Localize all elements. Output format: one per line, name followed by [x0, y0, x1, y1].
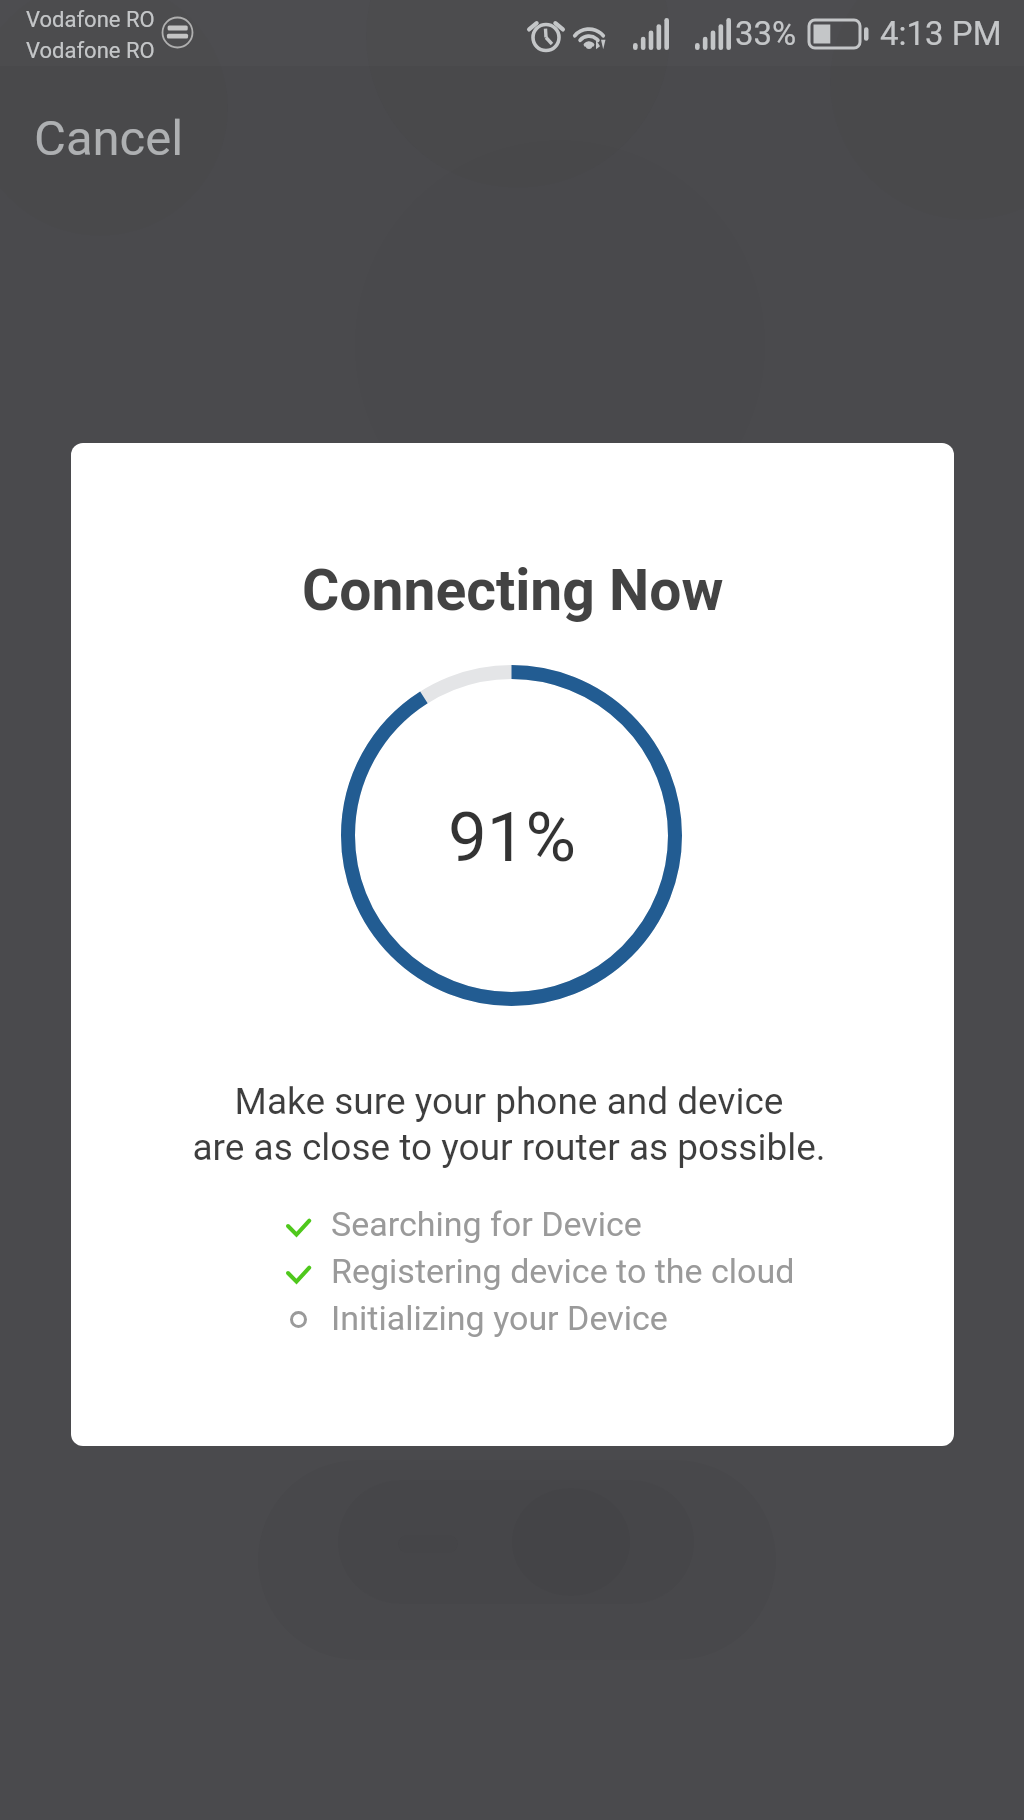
button[interactable]: Cancel: [0, 68, 250, 208]
staticText: Cancel: [34, 110, 184, 167]
staticText: Connecting Now: [302, 557, 724, 624]
other: Alarm set: [527, 15, 565, 53]
staticText: Vodafone RO: [26, 38, 155, 64]
staticText: Registering device to the cloud: [331, 1251, 795, 1291]
staticText: Vodafone RO: [26, 7, 155, 33]
other: App notification: [161, 16, 194, 49]
staticText: 91%: [448, 797, 577, 878]
staticText: 33%: [735, 14, 797, 53]
other: Wi-Fi connected: [573, 15, 613, 53]
staticText: Searching for Device: [331, 1204, 642, 1244]
other: Connection progress 91 percent: [341, 665, 682, 1006]
staticText: 4:13 PM: [880, 14, 1002, 53]
other: Mobile signal strength: [633, 18, 669, 50]
staticText: Initializing your Device: [331, 1298, 668, 1338]
staticText: Make sure your phone and device are as c…: [192, 1080, 826, 1169]
other: Mobile signal strength: [695, 18, 731, 50]
other: Battery 33 percent: [809, 20, 867, 48]
